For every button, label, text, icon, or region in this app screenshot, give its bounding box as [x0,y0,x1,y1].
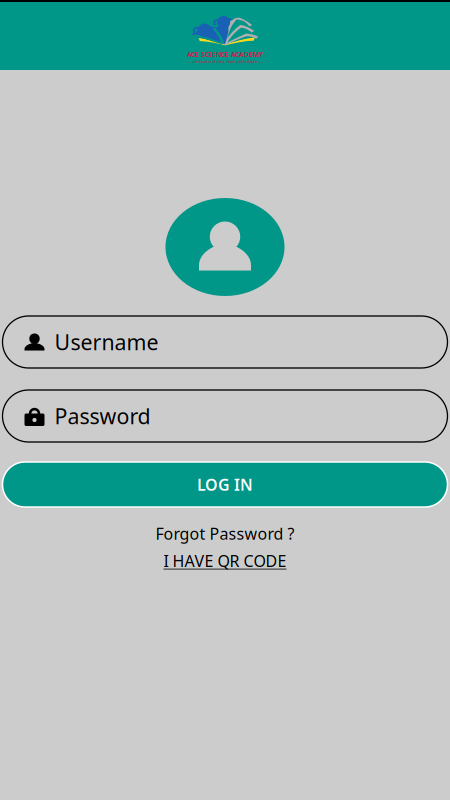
staticText: — start with a dream, finish with a futu… [186,59,263,64]
staticText: ACE SCIENCE ACADEMY [187,50,263,59]
button[interactable]: Username [2,316,447,368]
staticText: I HAVE QR CODE [163,550,286,571]
button[interactable]: LOG IN [2,462,447,507]
staticText: Password [54,402,150,430]
button[interactable]: I HAVE QR CODE [163,550,286,571]
staticText: Username [54,328,158,356]
staticText: Forgot Password ? [155,523,294,544]
button[interactable]: Password [2,390,447,442]
button[interactable]: Forgot Password ? [155,523,294,544]
staticText: LOG IN [197,474,253,495]
